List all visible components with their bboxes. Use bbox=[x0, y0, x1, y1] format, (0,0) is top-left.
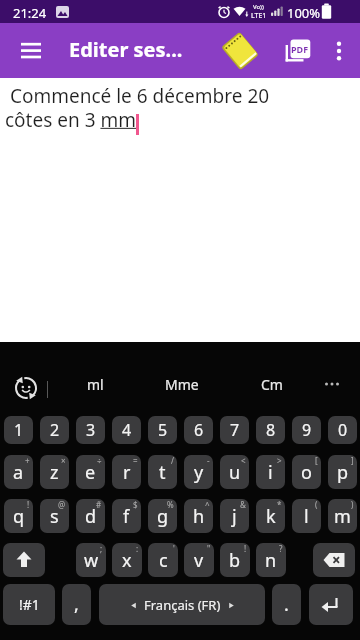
staticText: = bbox=[133, 455, 138, 466]
staticText: 1 bbox=[14, 419, 24, 441]
button[interactable]: q bbox=[4, 499, 33, 533]
button[interactable]: t bbox=[148, 455, 177, 489]
button[interactable]: y bbox=[184, 455, 213, 489]
button[interactable]: ml bbox=[60, 368, 130, 400]
button[interactable]: i bbox=[256, 455, 285, 489]
staticText: i bbox=[268, 460, 273, 485]
button[interactable]: x bbox=[112, 543, 142, 577]
button[interactable]: h bbox=[184, 499, 213, 533]
button[interactable]: Français (FR) bbox=[99, 584, 265, 625]
staticText: > bbox=[277, 455, 282, 466]
button[interactable]: d bbox=[76, 499, 105, 533]
staticText: ) bbox=[351, 499, 354, 510]
button[interactable] bbox=[309, 584, 353, 625]
staticText: ( bbox=[315, 499, 318, 510]
staticText: 5 bbox=[158, 419, 168, 441]
staticText: s bbox=[50, 504, 59, 529]
staticText: PDF bbox=[291, 43, 309, 55]
staticText: 100% bbox=[287, 4, 321, 22]
staticText: h bbox=[193, 504, 205, 529]
button[interactable]: c bbox=[148, 543, 178, 577]
staticText: @ bbox=[58, 499, 66, 510]
button[interactable] bbox=[315, 368, 349, 400]
button[interactable]: 5 bbox=[148, 416, 177, 444]
staticText: t bbox=[159, 460, 166, 485]
staticText: LTE1 bbox=[251, 11, 267, 21]
button[interactable]: p bbox=[328, 455, 357, 489]
button[interactable]: g bbox=[148, 499, 177, 533]
staticText: ÷ bbox=[97, 455, 102, 466]
button[interactable]: l bbox=[292, 499, 321, 533]
staticText: Commencé le 6 décembre 20 côtes en 3 mm bbox=[5, 83, 270, 132]
button[interactable]: z bbox=[40, 455, 69, 489]
button[interactable] bbox=[3, 543, 45, 577]
staticText: b bbox=[229, 548, 241, 573]
staticText: / bbox=[171, 455, 174, 466]
button[interactable]: n bbox=[256, 543, 286, 577]
staticText: - bbox=[207, 455, 210, 466]
button[interactable]: PDF bbox=[275, 29, 319, 73]
staticText: u bbox=[229, 460, 241, 485]
button[interactable]: m bbox=[328, 499, 357, 533]
button[interactable]: j bbox=[220, 499, 249, 533]
button[interactable]: 0 bbox=[328, 416, 357, 444]
button[interactable] bbox=[322, 31, 356, 71]
staticText: d bbox=[85, 504, 97, 529]
button[interactable]: u bbox=[220, 455, 249, 489]
staticText: % bbox=[167, 499, 174, 510]
staticText: ^ bbox=[205, 499, 210, 510]
staticText: e bbox=[85, 460, 96, 485]
staticText: 9 bbox=[302, 419, 312, 441]
button[interactable]: f bbox=[112, 499, 141, 533]
staticText: " bbox=[207, 543, 211, 554]
staticText: ' bbox=[173, 543, 175, 554]
button[interactable]: 7 bbox=[220, 416, 249, 444]
staticText: ml bbox=[87, 375, 104, 394]
staticText: * bbox=[277, 499, 282, 510]
staticText: : bbox=[136, 543, 139, 554]
button[interactable]: b bbox=[220, 543, 250, 577]
button[interactable]: 9 bbox=[292, 416, 321, 444]
button[interactable]: 1 bbox=[4, 416, 33, 444]
button[interactable] bbox=[216, 29, 264, 73]
staticText: , bbox=[74, 592, 79, 617]
button[interactable]: 4 bbox=[112, 416, 141, 444]
button[interactable] bbox=[8, 373, 44, 403]
button[interactable]: . bbox=[272, 584, 301, 625]
staticText: v bbox=[194, 548, 204, 573]
button[interactable]: 3 bbox=[76, 416, 105, 444]
staticText: Cm bbox=[261, 375, 283, 394]
staticText: Français (FR) bbox=[144, 596, 221, 614]
staticText: ! bbox=[244, 543, 247, 554]
staticText: Editer ses... bbox=[69, 36, 183, 63]
button[interactable]: o bbox=[292, 455, 321, 489]
staticText: 6 bbox=[194, 419, 204, 441]
staticText: 2 bbox=[50, 419, 60, 441]
staticText: < bbox=[241, 455, 246, 466]
staticText: Mme bbox=[165, 375, 199, 394]
button[interactable]: Cm bbox=[237, 368, 307, 400]
staticText: $ bbox=[133, 499, 138, 510]
staticText: p bbox=[337, 460, 349, 485]
staticText: r bbox=[123, 460, 131, 485]
button[interactable]: k bbox=[256, 499, 285, 533]
button[interactable]: a bbox=[4, 455, 33, 489]
staticText: a bbox=[13, 460, 24, 485]
staticText: ; bbox=[100, 543, 103, 554]
button[interactable]: , bbox=[62, 584, 91, 625]
button[interactable]: 2 bbox=[40, 416, 69, 444]
button[interactable] bbox=[9, 35, 53, 67]
staticText: ] bbox=[351, 455, 354, 466]
button[interactable]: 6 bbox=[184, 416, 213, 444]
button[interactable] bbox=[313, 543, 355, 577]
button[interactable]: r bbox=[112, 455, 141, 489]
button[interactable]: v bbox=[184, 543, 214, 577]
staticText: 21:24 bbox=[13, 4, 47, 22]
staticText: & bbox=[240, 499, 246, 510]
button[interactable]: s bbox=[40, 499, 69, 533]
button[interactable]: 8 bbox=[256, 416, 285, 444]
button[interactable]: Mme bbox=[147, 368, 217, 400]
button[interactable]: e bbox=[76, 455, 105, 489]
button[interactable]: !#1 bbox=[3, 584, 55, 625]
button[interactable]: w bbox=[76, 543, 106, 577]
